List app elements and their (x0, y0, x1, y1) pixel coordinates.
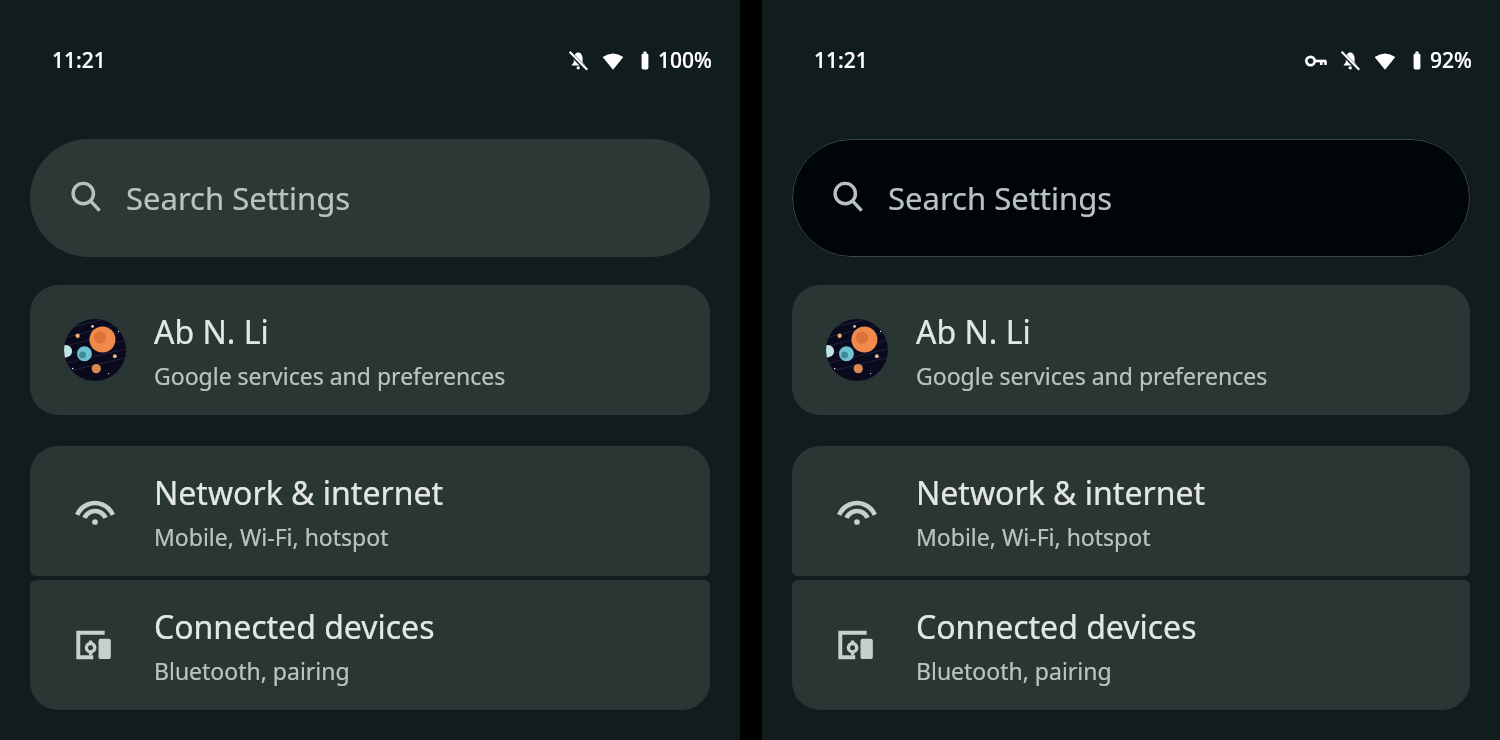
button[interactable]: Search Settings (30, 139, 710, 257)
staticText: Bluetooth, pairing (154, 655, 350, 686)
staticText: Search Settings (888, 177, 1113, 219)
staticText: 92% (1430, 46, 1472, 75)
staticText: 11:21 (52, 46, 106, 75)
button[interactable]: Connected devices (30, 580, 710, 710)
staticText: Ab N. Li (916, 310, 1031, 354)
staticText: Ab N. Li (154, 310, 269, 354)
button[interactable]: Connected devices (792, 580, 1470, 710)
button[interactable]: Account avatar (792, 285, 1470, 415)
button[interactable]: Network & internet (792, 446, 1470, 576)
staticText: 100% (658, 46, 712, 75)
staticText: Network & internet (916, 471, 1206, 515)
staticText: Bluetooth, pairing (916, 655, 1112, 686)
staticText: Connected devices (916, 605, 1197, 649)
staticText: Connected devices (154, 605, 435, 649)
button[interactable]: Network & internet (30, 446, 710, 576)
staticText: Google services and preferences (916, 360, 1268, 391)
staticText: Mobile, Wi-Fi, hotspot (916, 521, 1151, 552)
button[interactable]: Account avatar (30, 285, 710, 415)
staticText: Search Settings (126, 177, 351, 219)
staticText: Network & internet (154, 471, 444, 515)
staticText: Mobile, Wi-Fi, hotspot (154, 521, 389, 552)
staticText: 11:21 (814, 46, 868, 75)
other: Account avatar (826, 319, 888, 381)
staticText: Google services and preferences (154, 360, 506, 391)
button[interactable]: Search Settings (792, 139, 1470, 257)
other: Account avatar (64, 319, 126, 381)
